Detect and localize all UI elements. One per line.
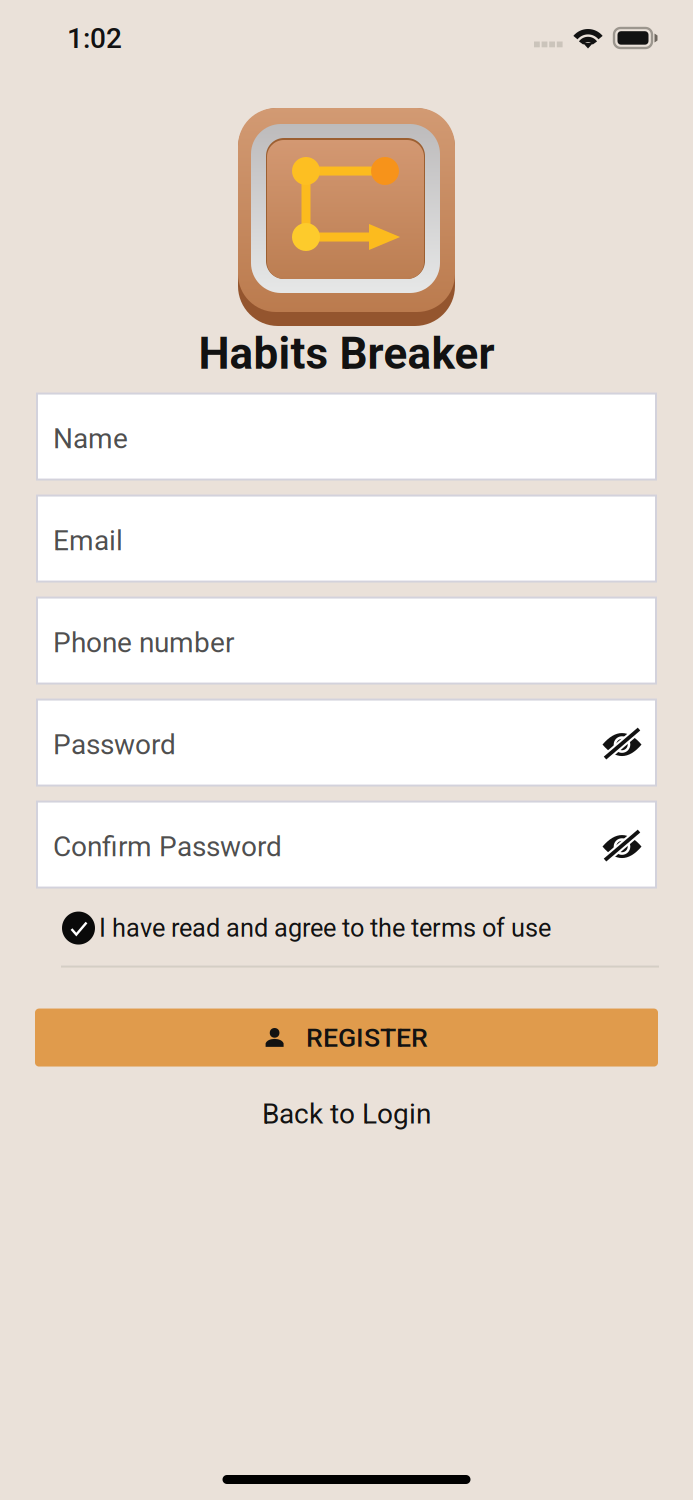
button[interactable]: Name <box>37 394 656 480</box>
staticText: Confirm Password <box>53 830 282 863</box>
staticText: Phone number <box>53 626 234 659</box>
button[interactable]: Back to Login <box>238 1092 455 1136</box>
staticText: 1:02 <box>67 22 122 55</box>
button[interactable]: Confirm Password <box>37 802 656 888</box>
staticText: I have read and agree to the terms of us… <box>99 913 551 943</box>
staticText: Habits Breaker <box>198 328 494 380</box>
button[interactable]: I have read and agree to the terms of us… <box>0 912 693 945</box>
button[interactable]: Phone number <box>37 598 656 684</box>
staticText: Password <box>53 728 176 761</box>
staticText: Email <box>53 524 123 557</box>
staticText: Back to Login <box>262 1098 431 1130</box>
button[interactable]: REGISTER <box>35 1009 658 1067</box>
staticText: Name <box>53 422 128 455</box>
staticText: REGISTER <box>306 1022 428 1053</box>
button[interactable]: Email <box>37 496 656 582</box>
button[interactable]: Password <box>37 700 656 786</box>
